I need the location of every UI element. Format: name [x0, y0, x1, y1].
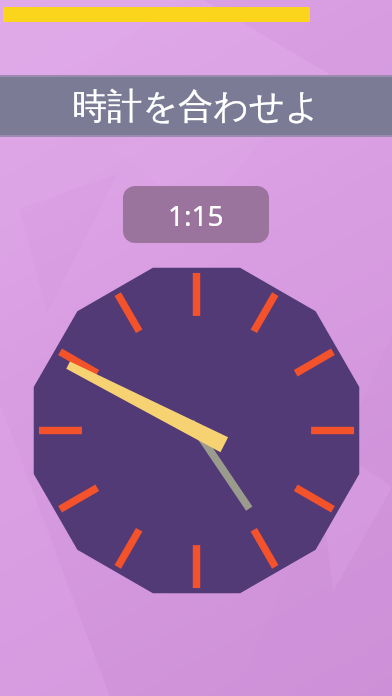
staticText: 1:15: [168, 196, 224, 234]
staticText: 時計を合わせよ: [72, 84, 321, 128]
button[interactable]: Analog clock, set the time: [28, 262, 365, 599]
button[interactable]: 1:15: [123, 186, 269, 243]
button[interactable]: 時計を合わせよ: [0, 75, 392, 137]
